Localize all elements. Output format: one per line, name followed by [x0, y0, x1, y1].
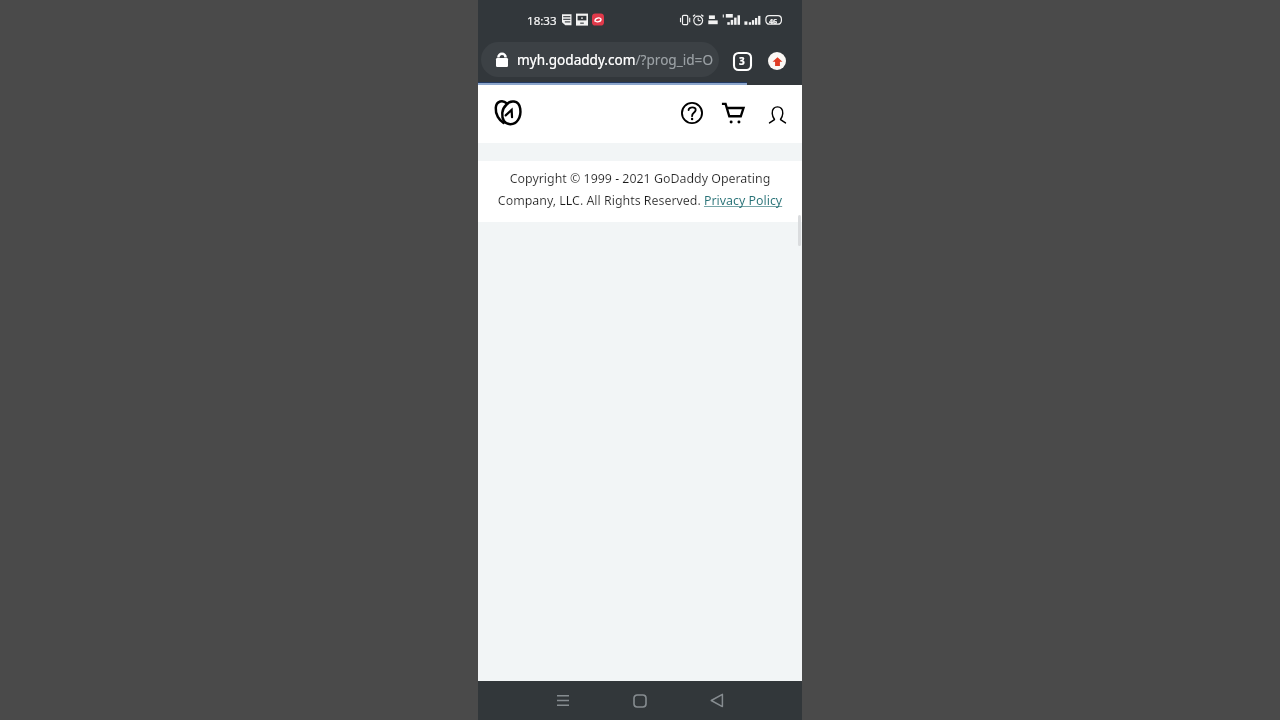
button[interactable]: Back: [695, 681, 739, 720]
staticText: 46: [769, 16, 778, 26]
button[interactable]: myh.godaddy.com/?prog_id=O: [481, 42, 719, 77]
button[interactable]: Recents: [541, 681, 585, 720]
button[interactable]: Upload: [768, 52, 786, 70]
staticText: 3: [739, 54, 745, 68]
button[interactable]: Account: [758, 94, 796, 132]
button[interactable]: GoDaddy home: [488, 92, 528, 132]
staticText: myh.godaddy.com/?prog_id=O: [517, 50, 714, 69]
button[interactable]: Help: [671, 94, 713, 132]
button[interactable]: Privacy Policy: [700, 197, 780, 215]
staticText: 18:33: [527, 13, 557, 29]
staticText: Copyright © 1999 - 2021 GoDaddy Operatin…: [490, 170, 790, 209]
button[interactable]: Home: [618, 681, 662, 720]
button[interactable]: Cart: [711, 94, 753, 132]
button[interactable]: Tabs: [727, 46, 757, 76]
